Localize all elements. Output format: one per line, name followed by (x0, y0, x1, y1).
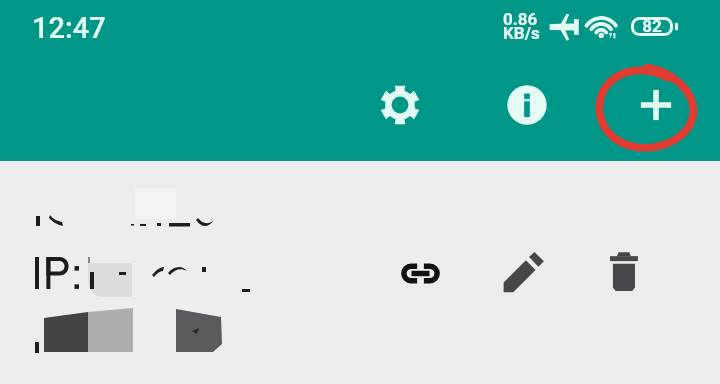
button[interactable]: Delete (601, 251, 646, 296)
button[interactable]: Edit (500, 251, 545, 296)
button[interactable]: Copy link (398, 251, 443, 296)
staticText: 0.86 (503, 9, 538, 29)
button[interactable]: Settings (376, 81, 424, 129)
button[interactable]: Add (632, 81, 680, 129)
staticText: 82 (631, 16, 673, 36)
staticText: KB/s (503, 23, 540, 43)
button[interactable]: Info (503, 81, 551, 129)
staticText: 12:47 (32, 11, 106, 45)
